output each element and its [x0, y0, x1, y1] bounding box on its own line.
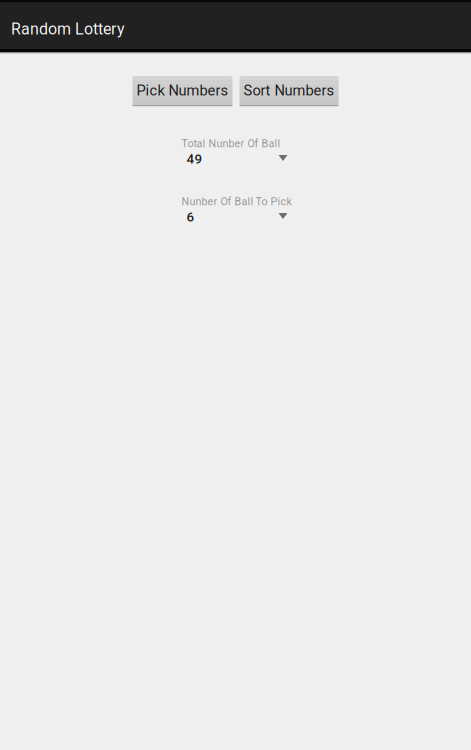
button[interactable]: Sort Numbers [239, 76, 338, 107]
button[interactable]: Pick Numbers [132, 76, 232, 107]
staticText: Pick Numbers [136, 82, 228, 99]
staticText: Total Nunber Of Ball [181, 137, 280, 150]
staticText: 49 [186, 151, 202, 167]
button[interactable]: Total Nunber Of Ball [181, 137, 293, 168]
staticText: 6 [186, 209, 194, 225]
staticText: Sort Numbers [243, 82, 334, 99]
button[interactable]: Nunber Of Ball To Pick [181, 195, 293, 226]
staticText: Nunber Of Ball To Pick [181, 195, 291, 208]
staticText: Random Lottery [11, 20, 125, 38]
